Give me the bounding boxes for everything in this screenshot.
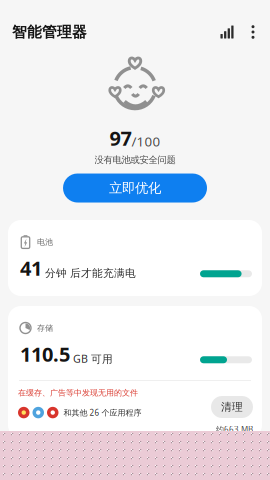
button[interactable]: 电池: [8, 220, 262, 296]
staticText: 存储: [37, 323, 53, 333]
staticText: 在缓存、广告等中发现无用的文件: [18, 388, 138, 398]
button[interactable]: Usage statistics: [213, 16, 241, 48]
button[interactable]: 立即优化: [63, 173, 207, 202]
staticText: 约663 MB: [216, 424, 253, 435]
staticText: 97: [109, 125, 131, 151]
staticText: GB 可用: [70, 352, 113, 366]
staticText: 智能管理器: [12, 23, 87, 41]
staticText: 没有电池或安全问题: [94, 154, 175, 166]
staticText: /100: [131, 133, 160, 150]
button[interactable]: More options: [241, 16, 265, 48]
staticText: 分钟 后才能充满电: [42, 267, 136, 280]
staticText: 110.5: [20, 341, 70, 367]
staticText: 41: [20, 255, 42, 281]
staticText: 清理: [221, 400, 243, 413]
staticText: 立即优化: [109, 180, 161, 196]
button[interactable]: 清理: [211, 396, 253, 418]
staticText: 和其他 26 个应用程序: [63, 407, 141, 418]
button[interactable]: 存储: [8, 306, 262, 380]
staticText: 电池: [37, 237, 53, 247]
